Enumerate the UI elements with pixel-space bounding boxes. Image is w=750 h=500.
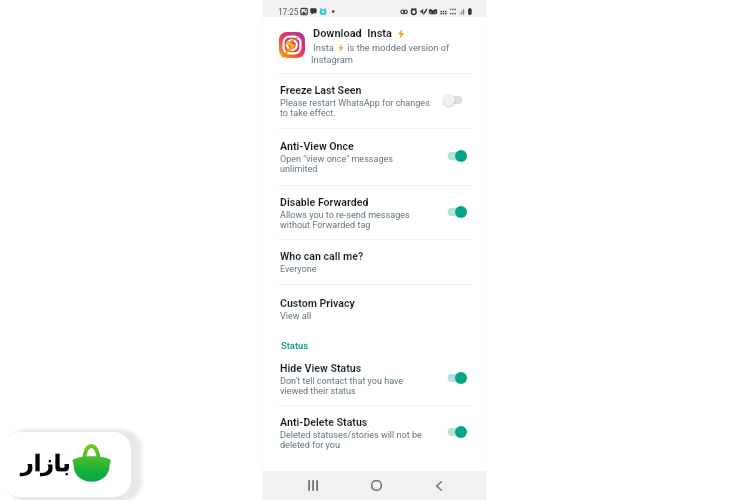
button[interactable]: Toggle on [443,371,467,385]
staticText: Please restart WhatsApp for changes to t… [280,98,430,118]
staticText: Open "view once" messages unlimited [280,154,393,174]
staticText: Status [281,340,309,351]
staticText: View all [280,311,312,322]
button[interactable]: Toggle off [443,93,467,107]
staticText: Anti-View Once [280,140,354,152]
staticText: Allows you to re-send messages without F… [280,210,410,230]
button[interactable]: Disable Forwarded [262,186,487,239]
staticText: 17:25 [278,7,299,17]
staticText: Hide View Status [280,362,362,374]
button[interactable]: Download Insta [262,17,487,73]
staticText: Disable Forwarded [280,196,369,208]
staticText: Freeze Last Seen [280,84,362,96]
staticText: Custom Privacy [280,297,355,309]
staticText: Anti-Delete Status [280,416,368,428]
staticText: Don't tell contact that you have viewed … [280,376,404,396]
button[interactable]: Home [361,471,391,500]
staticText: Download Insta [313,27,392,40]
button[interactable]: Toggle on [443,149,467,163]
button[interactable]: Anti-View Once [262,129,487,185]
button[interactable]: Recent apps [298,471,328,500]
button[interactable]: Bazaar [4,432,131,497]
staticText: Everyone [280,264,317,275]
staticText: Instagram [311,54,353,65]
staticText: Insta [311,42,337,53]
staticText: is the modded version of [345,42,450,53]
staticText: بازار [21,451,71,477]
button[interactable]: Back [424,471,454,500]
button[interactable]: Toggle on [443,205,467,219]
button[interactable]: Anti-Delete Status [262,406,487,460]
staticText: Who can call me? [280,250,364,262]
button[interactable]: Hide View Status [262,353,487,405]
button[interactable]: Custom Privacy [262,285,487,333]
button[interactable]: Toggle on [443,425,467,439]
button[interactable]: Freeze Last Seen [262,74,487,128]
button[interactable]: Who can call me? [262,240,487,284]
staticText: Deleted statuses/stories will not be del… [280,430,422,450]
